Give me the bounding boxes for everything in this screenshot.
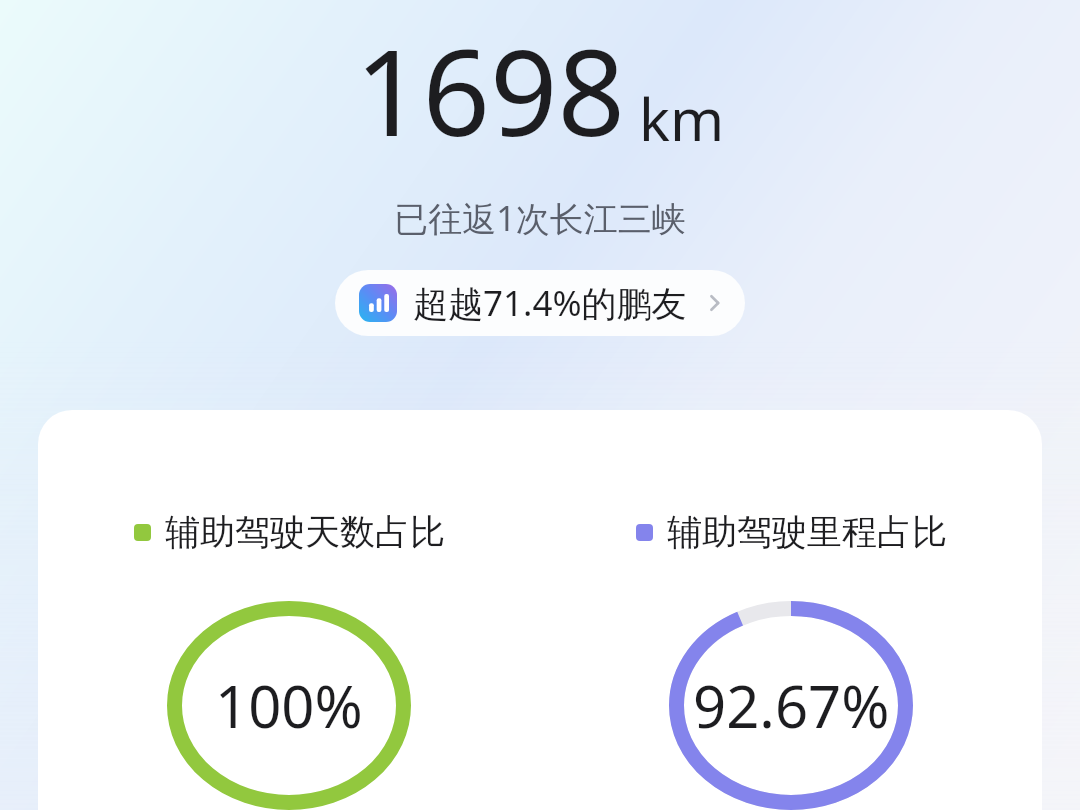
staticText: 辅助驾驶里程占比 <box>667 510 947 554</box>
button[interactable]: 超越71.4%的鹏友 <box>335 270 745 336</box>
staticText: 100% <box>215 666 363 745</box>
staticText: 92.67% <box>693 666 890 745</box>
staticText: 1698 <box>355 10 625 171</box>
staticText: 辅助驾驶天数占比 <box>165 510 445 554</box>
staticText: 超越71.4%的鹏友 <box>413 279 687 327</box>
staticText: km <box>639 79 725 158</box>
button[interactable]: 辅助驾驶天数占比 <box>38 410 540 810</box>
button[interactable]: 辅助驾驶里程占比 <box>540 410 1042 810</box>
staticText: 已往返1次长江三峡 <box>0 195 1080 241</box>
